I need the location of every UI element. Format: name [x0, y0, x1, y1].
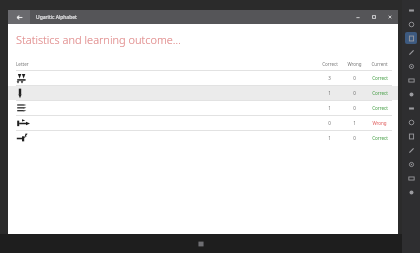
- button[interactable]: Collapse: [405, 4, 417, 16]
- staticText: Correct: [372, 75, 388, 81]
- staticText: Correct: [372, 90, 388, 96]
- staticText: 1: [328, 135, 331, 141]
- staticText: Letter: [16, 61, 29, 67]
- button[interactable]: 1: [8, 101, 398, 115]
- button[interactable]: Zoom: [405, 46, 417, 58]
- button[interactable]: Overview: [405, 158, 417, 170]
- button[interactable]: 1: [8, 86, 398, 100]
- button[interactable]: Volume down: [405, 102, 417, 114]
- staticText: 1: [328, 105, 331, 111]
- button[interactable]: More: [405, 18, 417, 30]
- button[interactable]: Help: [405, 186, 417, 198]
- button[interactable]: 3: [8, 71, 398, 85]
- staticText: Wrong: [372, 120, 387, 126]
- button[interactable]: Back: [8, 10, 30, 24]
- staticText: 0: [328, 120, 331, 126]
- button[interactable]: Volume up: [405, 88, 417, 100]
- button[interactable]: Rotate right: [405, 74, 417, 86]
- button[interactable]: Maximize: [366, 10, 382, 24]
- button[interactable]: Screenshot: [405, 32, 417, 44]
- staticText: 0: [353, 105, 356, 111]
- button[interactable]: Power: [405, 116, 417, 128]
- staticText: Wrong: [347, 61, 362, 67]
- button[interactable]: Settings: [405, 172, 417, 184]
- button[interactable]: 0: [8, 116, 398, 130]
- staticText: Correct: [322, 61, 338, 67]
- staticText: Correct: [372, 105, 388, 111]
- button[interactable]: Back: [405, 130, 417, 142]
- staticText: Correct: [372, 135, 388, 141]
- button[interactable]: Close: [382, 10, 398, 24]
- staticText: Current: [371, 61, 388, 67]
- staticText: Statistics and learning outcome…: [16, 32, 181, 47]
- button[interactable]: Home: [405, 144, 417, 156]
- staticText: 3: [328, 75, 331, 81]
- staticText: 0: [353, 75, 356, 81]
- staticText: 1: [353, 120, 356, 126]
- button[interactable]: Taskbar item: [197, 240, 205, 248]
- button[interactable]: Minimize: [350, 10, 366, 24]
- staticText: 1: [328, 90, 331, 96]
- staticText: 0: [353, 135, 356, 141]
- button[interactable]: 1: [8, 131, 398, 145]
- button[interactable]: Rotate left: [405, 60, 417, 72]
- staticText: 0: [353, 90, 356, 96]
- staticText: Ugaritic Alphabet: [36, 14, 77, 21]
